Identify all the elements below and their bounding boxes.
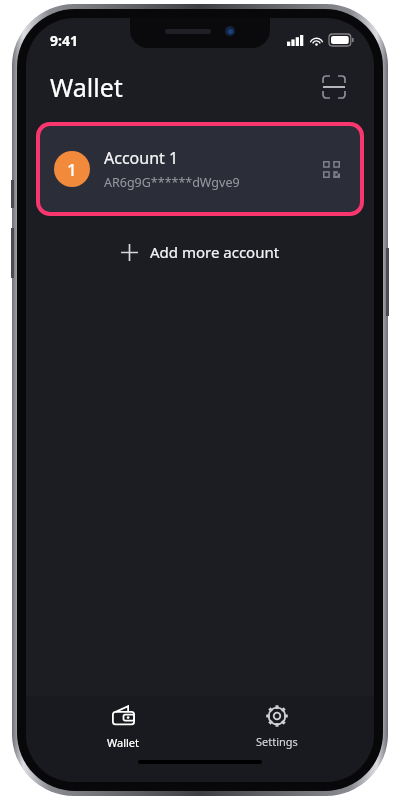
button[interactable]: Wallet: [46, 696, 200, 758]
staticText: 1: [67, 158, 77, 181]
staticText: AR6g9G******dWgve9: [104, 174, 240, 191]
staticText: Add more account: [150, 242, 280, 262]
button[interactable]: Add more account: [26, 232, 374, 272]
staticText: Wallet: [107, 735, 140, 750]
button[interactable]: 1: [36, 122, 364, 216]
button[interactable]: Scan QR code: [314, 67, 354, 107]
staticText: Account 1: [104, 147, 179, 169]
button[interactable]: Show account QR code: [316, 154, 346, 184]
staticText: Settings: [256, 734, 298, 749]
staticText: Wallet: [50, 70, 123, 104]
button[interactable]: Settings: [200, 696, 354, 758]
staticText: 9:41: [50, 31, 78, 50]
